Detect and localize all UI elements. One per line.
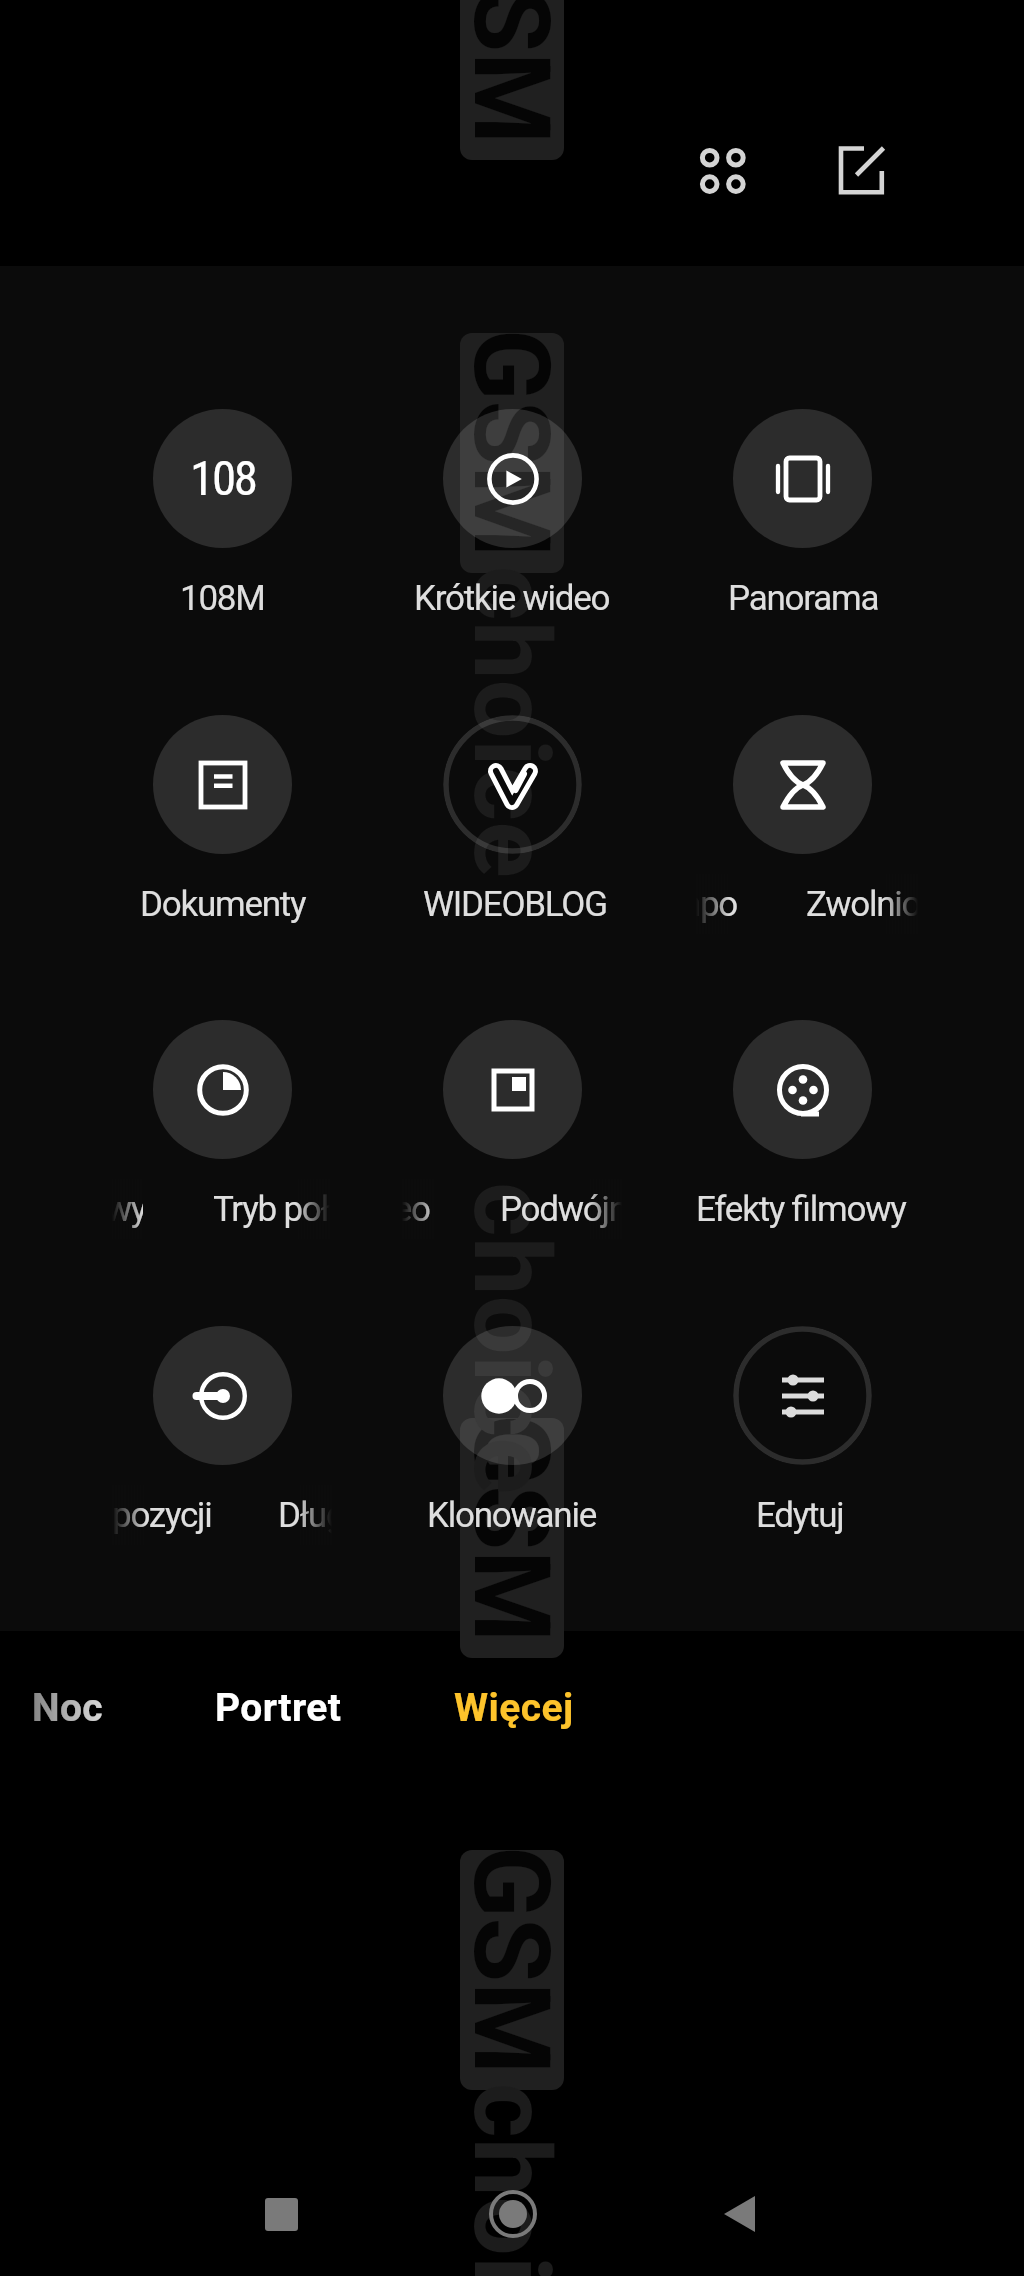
- staticText: pozycji: [112, 1495, 212, 1536]
- staticText: Filmowy: [112, 1189, 143, 1230]
- staticText: GSM: [452, 1414, 572, 1643]
- button[interactable]: Edit modes: [733, 1326, 872, 1465]
- staticText: choice: [452, 566, 572, 878]
- staticText: choice: [452, 1182, 572, 1494]
- button[interactable]: Slow motion: [733, 715, 872, 854]
- button[interactable]: Panorama: [733, 409, 872, 548]
- staticText: GSM: [452, 329, 572, 558]
- button[interactable]: Dual video: [443, 1020, 582, 1159]
- staticText: 108M: [180, 578, 265, 619]
- staticText: Edytuj: [756, 1495, 844, 1536]
- button[interactable]: Clone: [443, 1326, 582, 1465]
- button[interactable]: Short video: [443, 409, 582, 548]
- button[interactable]: Recent apps: [221, 2154, 341, 2274]
- staticText: Podwójne wideo: [500, 1189, 622, 1230]
- button[interactable]: Vlog: [443, 715, 582, 854]
- staticText: choice: [452, 2083, 572, 2276]
- button[interactable]: Half mode: [153, 1020, 292, 1159]
- staticText: Noc: [32, 1685, 104, 1731]
- button[interactable]: Long exposure: [153, 1326, 292, 1465]
- button[interactable]: Edit modes: [801, 111, 921, 231]
- staticText: 108: [190, 450, 256, 507]
- staticText: wideo: [402, 1189, 430, 1230]
- staticText: Zwolnione: [806, 884, 918, 925]
- button[interactable]: Home: [453, 2154, 573, 2274]
- button[interactable]: Documents: [153, 715, 292, 854]
- staticText: Długa: [278, 1495, 332, 1536]
- staticText: GSM: [452, 1846, 572, 2075]
- staticText: Portret: [215, 1685, 342, 1731]
- staticText: Dokumenty: [140, 884, 306, 925]
- button[interactable]: Back: [680, 2154, 800, 2274]
- staticText: tempo: [696, 884, 738, 925]
- staticText: Krótkie wideo: [414, 578, 610, 619]
- staticText: Więcej: [454, 1685, 574, 1731]
- staticText: WIDEOBLOG: [423, 884, 607, 925]
- staticText: GSM: [452, 0, 572, 145]
- button[interactable]: Movie effects: [733, 1020, 872, 1159]
- button[interactable]: Noc: [0, 1660, 150, 1756]
- button[interactable]: Więcej: [444, 1660, 584, 1756]
- staticText: Panorama: [728, 578, 879, 619]
- staticText: Tryb połowiczny: [214, 1189, 330, 1230]
- staticText: Klonowanie: [427, 1495, 596, 1536]
- button[interactable]: 108M: [153, 409, 292, 548]
- button[interactable]: Portret: [186, 1660, 370, 1756]
- button[interactable]: Modes grid: [663, 111, 783, 231]
- staticText: Efekty filmowy: [696, 1189, 906, 1230]
